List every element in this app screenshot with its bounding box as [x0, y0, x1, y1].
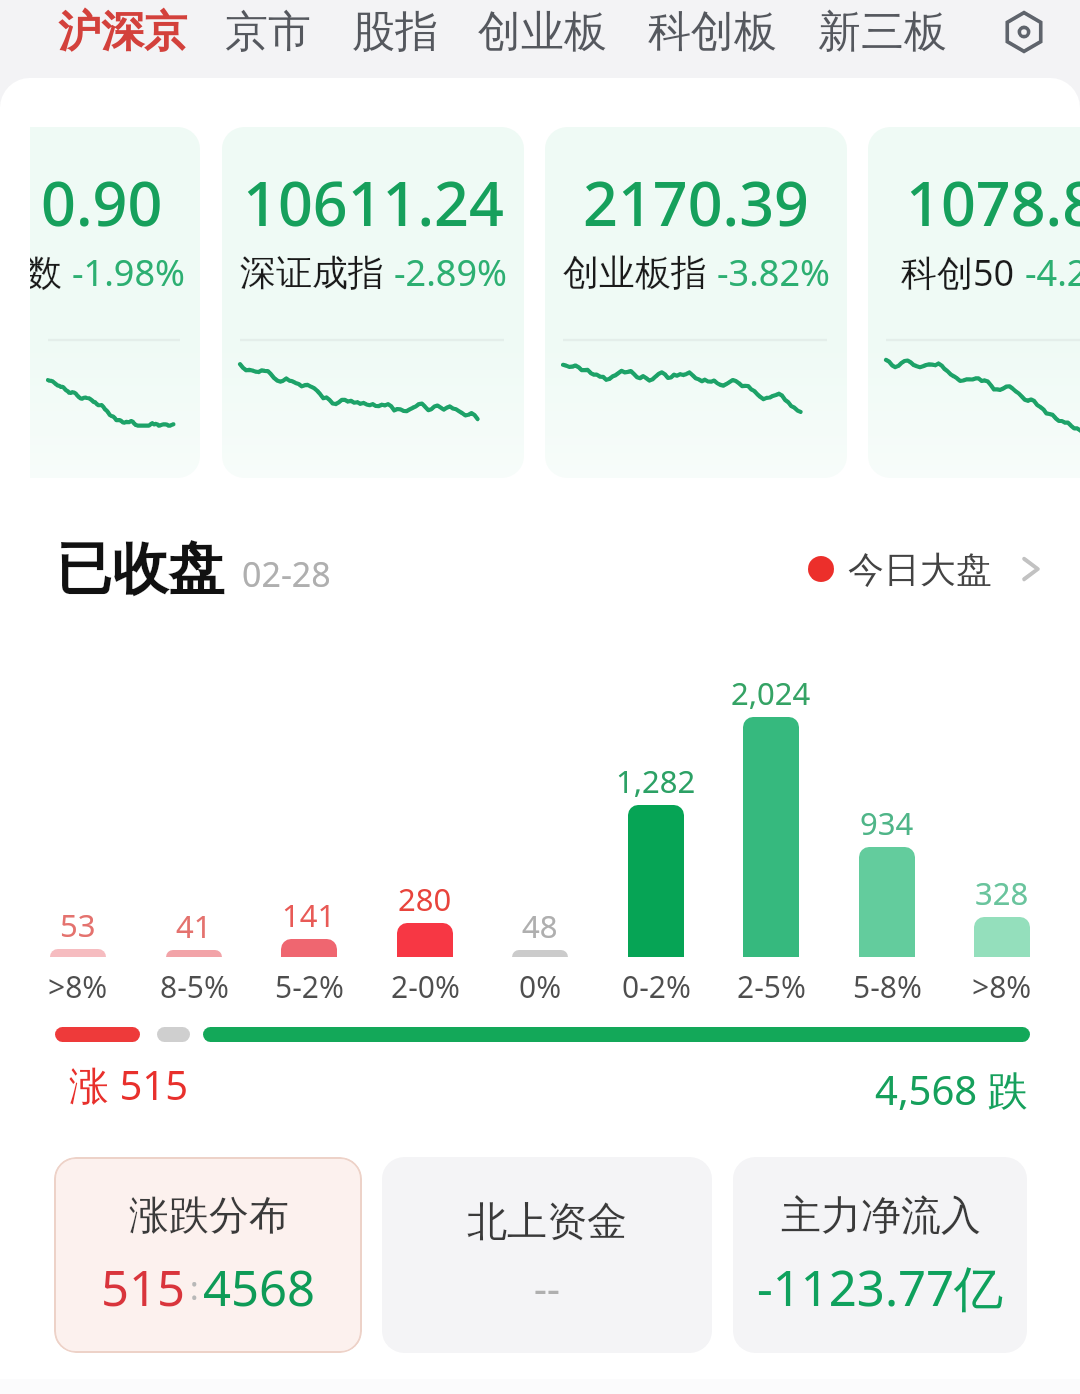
- staticText: 今日大盘: [848, 547, 992, 592]
- staticText: -3.82%: [717, 248, 830, 297]
- staticText: 科创50: [901, 248, 1015, 297]
- staticText: 141: [282, 894, 336, 936]
- staticText: 2-0%: [391, 966, 460, 1007]
- staticText: 2,024: [731, 672, 811, 714]
- staticText: 涨 515: [69, 1057, 189, 1112]
- staticText: 02-28: [242, 551, 331, 597]
- staticText: 4568: [203, 1254, 316, 1321]
- button[interactable]: [512, 950, 568, 957]
- button[interactable]: [166, 950, 222, 957]
- button[interactable]: 创业板: [464, 0, 621, 71]
- staticText: 数: [26, 250, 62, 295]
- button[interactable]: 0.90: [0, 127, 200, 478]
- staticText: 515: [101, 1254, 186, 1321]
- button[interactable]: [859, 847, 915, 957]
- button[interactable]: 主力净流入: [733, 1157, 1027, 1353]
- button[interactable]: [397, 923, 453, 957]
- button[interactable]: 10611.24: [222, 127, 524, 478]
- staticText: 0-2%: [622, 966, 691, 1007]
- staticText: 新三板: [818, 5, 947, 59]
- button[interactable]: [50, 949, 106, 957]
- staticText: 涨跌分布: [129, 1190, 289, 1240]
- button[interactable]: [743, 717, 799, 957]
- staticText: 沪深京: [58, 5, 187, 59]
- button[interactable]: 涨跌分布: [54, 1157, 362, 1353]
- staticText: 主力净流入: [781, 1190, 981, 1240]
- staticText: 科创板: [648, 5, 777, 59]
- staticText: :: [190, 1266, 199, 1310]
- staticText: 2-5%: [737, 966, 806, 1007]
- button[interactable]: 京市: [211, 0, 325, 71]
- staticText: 10611.24: [243, 161, 504, 244]
- button[interactable]: More options: [985, 0, 1063, 71]
- staticText: 48: [522, 905, 558, 947]
- staticText: 328: [975, 872, 1029, 914]
- staticText: 934: [860, 802, 914, 844]
- button[interactable]: 新三板: [804, 0, 961, 71]
- staticText: 280: [398, 878, 452, 920]
- button[interactable]: 沪深京: [44, 0, 201, 71]
- staticText: 8-5%: [160, 966, 229, 1007]
- button[interactable]: 北上资金: [382, 1157, 712, 1353]
- staticText: 1078.81: [906, 161, 1080, 244]
- staticText: -2.89%: [394, 248, 507, 297]
- staticText: -1123.77亿: [757, 1254, 1004, 1321]
- staticText: 创业板: [478, 5, 607, 59]
- staticText: 5-8%: [853, 966, 922, 1007]
- staticText: 创业板指: [563, 250, 707, 295]
- staticText: >8%: [972, 966, 1032, 1007]
- staticText: -4.21%: [1025, 248, 1080, 297]
- staticText: >8%: [48, 966, 108, 1007]
- staticText: 41: [176, 905, 212, 947]
- staticText: 已收盘: [56, 534, 224, 605]
- staticText: 5-2%: [275, 966, 344, 1007]
- staticText: --: [534, 1260, 560, 1314]
- button[interactable]: [628, 805, 684, 957]
- staticText: 京市: [225, 5, 311, 59]
- staticText: 2170.39: [583, 161, 809, 244]
- button[interactable]: 股指: [338, 0, 452, 71]
- button[interactable]: [974, 917, 1030, 957]
- staticText: -1.98%: [72, 248, 185, 297]
- staticText: 1,282: [616, 760, 696, 802]
- staticText: 北上资金: [467, 1196, 627, 1246]
- staticText: 0.90: [41, 161, 163, 244]
- staticText: 4,568 跌: [875, 1062, 1028, 1117]
- staticText: 股指: [352, 5, 438, 59]
- staticText: 深证成指: [240, 250, 384, 295]
- button[interactable]: 今日大盘: [800, 533, 1056, 605]
- button[interactable]: 科创板: [634, 0, 791, 71]
- button[interactable]: 1078.81: [868, 127, 1080, 478]
- staticText: 0%: [519, 966, 562, 1007]
- button[interactable]: [281, 939, 337, 957]
- staticText: 53: [60, 904, 96, 946]
- button[interactable]: 2170.39: [545, 127, 847, 478]
